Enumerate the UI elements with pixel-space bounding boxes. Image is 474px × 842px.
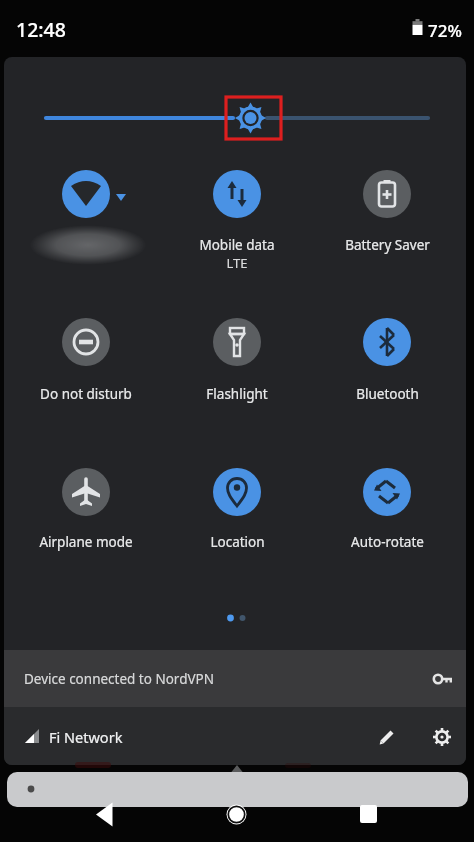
button[interactable] — [41, 452, 131, 562]
button[interactable] — [192, 452, 282, 562]
staticText: Auto-rotate — [351, 533, 424, 551]
staticText: 12:48 — [16, 16, 66, 43]
button[interactable] — [342, 302, 432, 412]
button[interactable] — [342, 154, 432, 264]
button[interactable] — [352, 798, 385, 831]
staticText: Do not disturb — [40, 385, 132, 403]
staticText: Bluetooth — [356, 385, 419, 403]
button[interactable] — [220, 798, 253, 831]
button[interactable]: Fi Network — [4, 707, 466, 765]
button[interactable] — [88, 798, 121, 831]
button[interactable] — [379, 728, 396, 745]
staticText: Battery Saver — [345, 236, 430, 254]
button[interactable] — [41, 302, 131, 412]
staticText: 72% — [428, 19, 462, 42]
button[interactable] — [342, 452, 432, 562]
button[interactable]: Device connected to NordVPN — [4, 650, 466, 707]
staticText: Mobile data — [199, 236, 275, 254]
staticText: Airplane mode — [39, 533, 133, 551]
button[interactable] — [7, 772, 468, 807]
button[interactable] — [41, 154, 131, 264]
button[interactable] — [433, 728, 451, 746]
button[interactable] — [192, 154, 282, 264]
staticText: Device connected to NordVPN — [24, 670, 214, 688]
staticText: Fi Network — [49, 727, 123, 747]
staticText: Flashlight — [206, 385, 268, 403]
staticText: LTE — [226, 254, 248, 272]
button[interactable] — [192, 302, 282, 412]
staticText: Location — [210, 533, 265, 551]
